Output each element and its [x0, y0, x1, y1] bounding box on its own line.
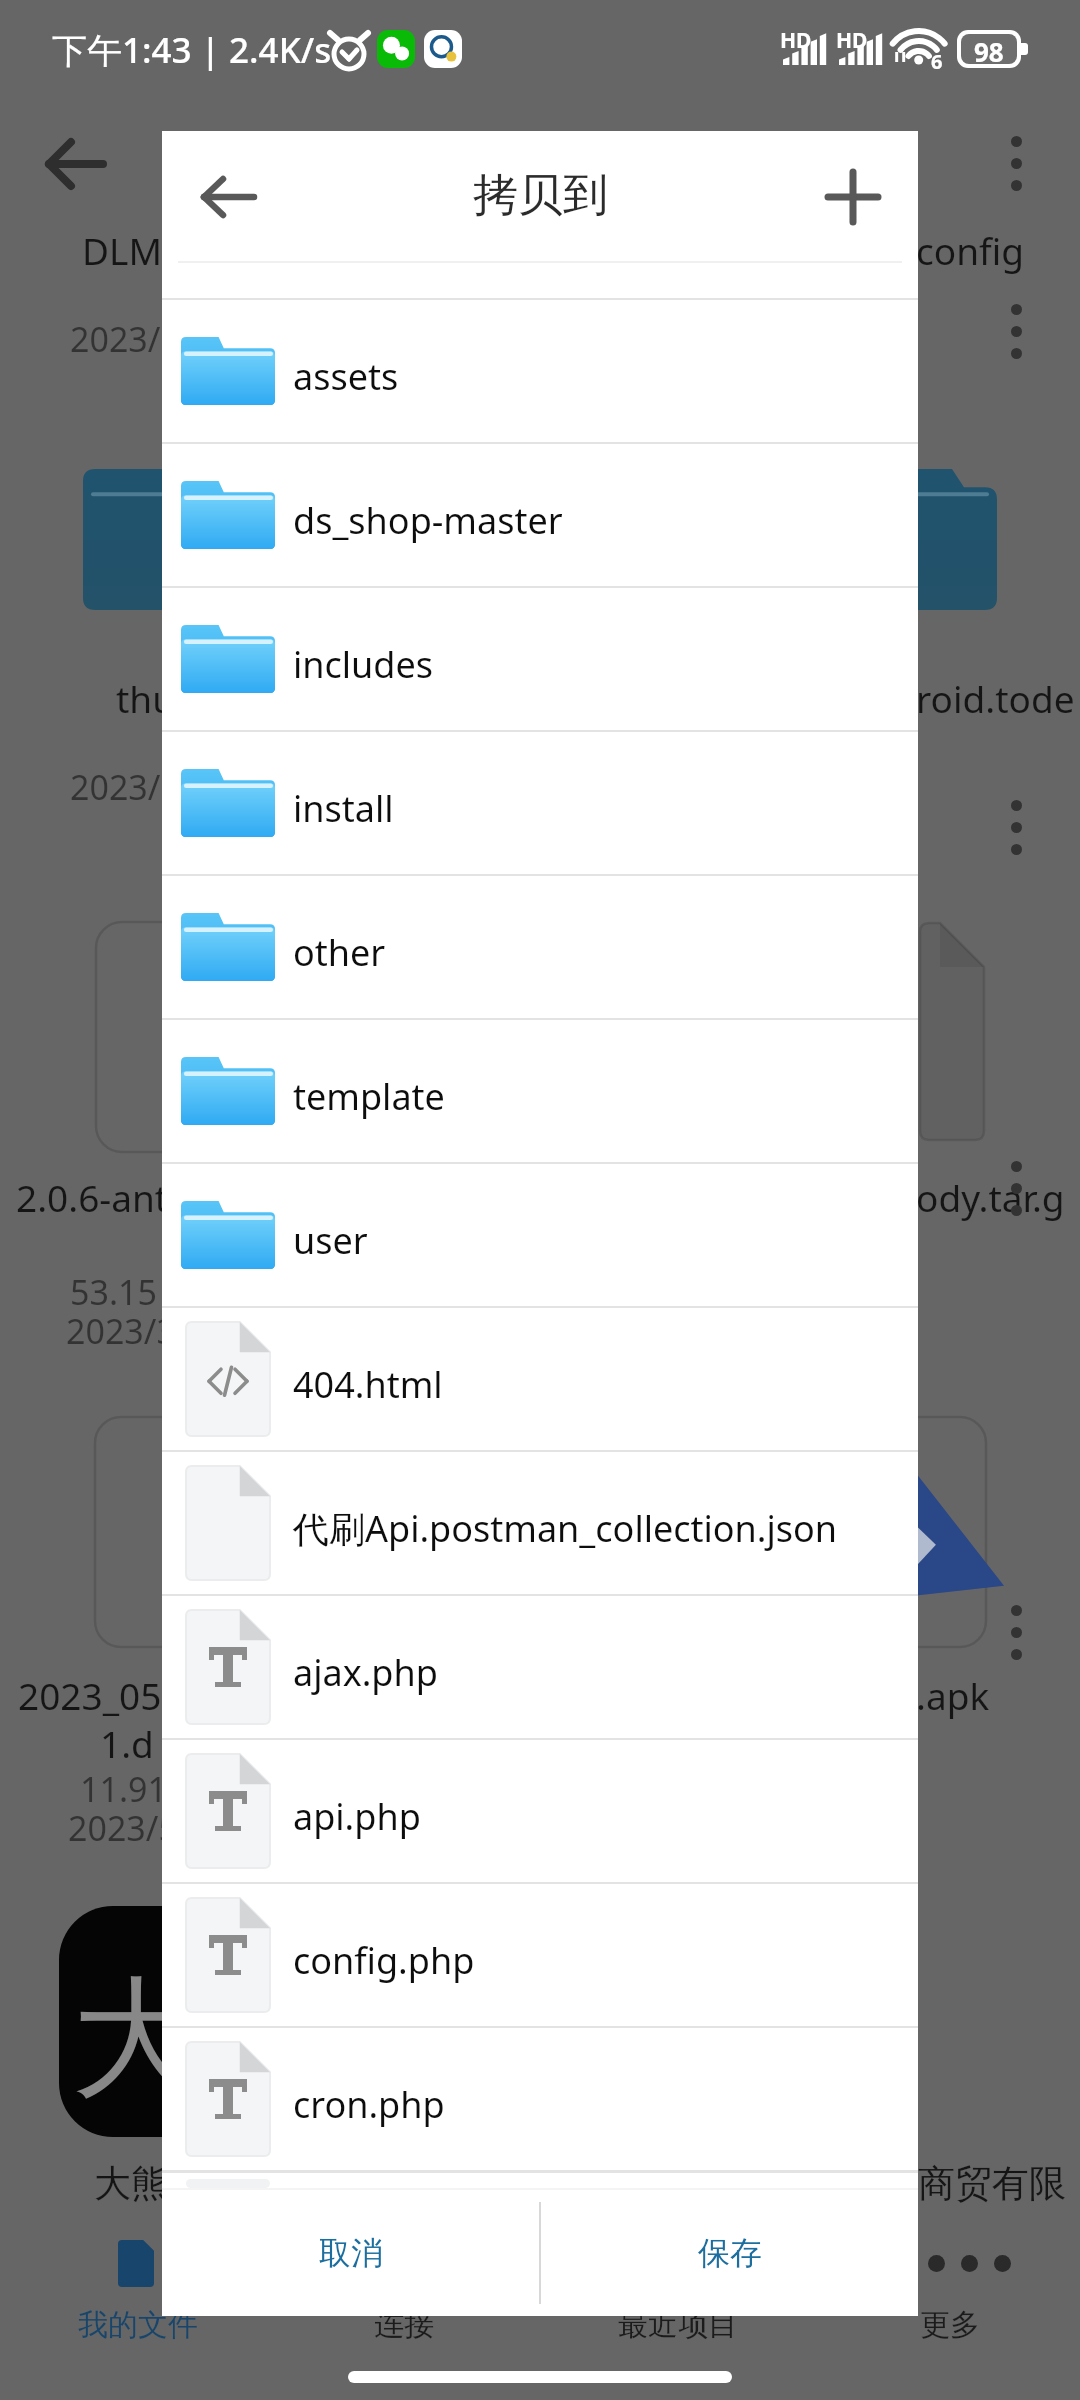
staticText: 最近项目 — [618, 2306, 738, 2344]
staticText: config.php — [293, 1936, 475, 1985]
staticText: includes — [293, 640, 434, 689]
button[interactable]: 代刷Api.postman_collection.json — [162, 1452, 918, 1594]
staticText: 2.0.6-ant — [16, 1172, 169, 1222]
staticText: HD — [836, 26, 868, 55]
button[interactable]: template — [162, 1020, 918, 1162]
staticText: 大 — [72, 1958, 202, 2122]
staticText: ody.tar.g — [916, 1172, 1065, 1222]
button[interactable]: Back — [173, 131, 283, 263]
staticText: user — [293, 1216, 368, 1265]
button[interactable]: 404.html — [162, 1308, 918, 1450]
staticText: 2023/2 — [70, 764, 180, 810]
staticText: 1.d — [100, 1718, 154, 1768]
staticText: install — [293, 784, 394, 833]
staticText: 11.91 K — [80, 1766, 197, 1812]
staticText: ds_shop-master — [293, 496, 563, 545]
staticText: 下午1:43 | 2.4K/s — [52, 26, 332, 74]
button[interactable]: includes — [162, 588, 918, 730]
button[interactable]: ajax.php — [162, 1596, 918, 1738]
button[interactable]: Add folder — [798, 131, 908, 263]
button[interactable]: other — [162, 876, 918, 1018]
staticText: 商贸有限 — [918, 2160, 1066, 2207]
staticText: assets — [293, 352, 399, 401]
button[interactable]: config.php — [162, 1884, 918, 2026]
staticText: config — [916, 225, 1025, 275]
staticText: 代刷Api.postman_collection.json — [293, 1504, 838, 1553]
button[interactable]: 取消 — [162, 2190, 539, 2316]
button[interactable]: ds_shop-master — [162, 444, 918, 586]
staticText: .apk — [916, 1670, 990, 1720]
staticText: 保存 — [698, 2233, 762, 2273]
staticText: DLM — [82, 225, 162, 275]
staticText: 2023/5/ — [68, 1805, 191, 1851]
staticText: 6 — [931, 48, 943, 75]
staticText: 更多 — [920, 2306, 980, 2344]
staticText: 我的文件 — [78, 2306, 198, 2344]
button[interactable]: install — [162, 732, 918, 874]
staticText: api.php — [293, 1792, 421, 1841]
staticText: 2023/2 — [70, 316, 180, 362]
staticText: template — [293, 1072, 445, 1121]
staticText: 连接 — [374, 2306, 434, 2344]
button[interactable]: 保存 — [541, 2190, 918, 2316]
button[interactable]: cron.php — [162, 2028, 918, 2170]
staticText: roid.tode — [916, 673, 1075, 723]
staticText: 拷贝到 — [473, 167, 608, 224]
staticText: 2023_05 — [18, 1670, 162, 1720]
staticText: other — [293, 928, 386, 977]
button[interactable]: user — [162, 1164, 918, 1306]
staticText: 98 — [974, 34, 1004, 64]
staticText: 404.html — [293, 1360, 443, 1409]
button[interactable]: assets — [162, 300, 918, 442]
button[interactable]: api.php — [162, 1740, 918, 1882]
staticText: thu — [116, 673, 176, 723]
staticText: 取消 — [319, 2233, 383, 2273]
staticText: 53.15 M — [70, 1269, 197, 1315]
staticText: cron.php — [293, 2080, 445, 2129]
staticText: 大熊 — [94, 2160, 168, 2207]
staticText: HD — [780, 26, 812, 55]
staticText: 2023/3/ — [66, 1308, 189, 1354]
staticText: ajax.php — [293, 1648, 438, 1697]
